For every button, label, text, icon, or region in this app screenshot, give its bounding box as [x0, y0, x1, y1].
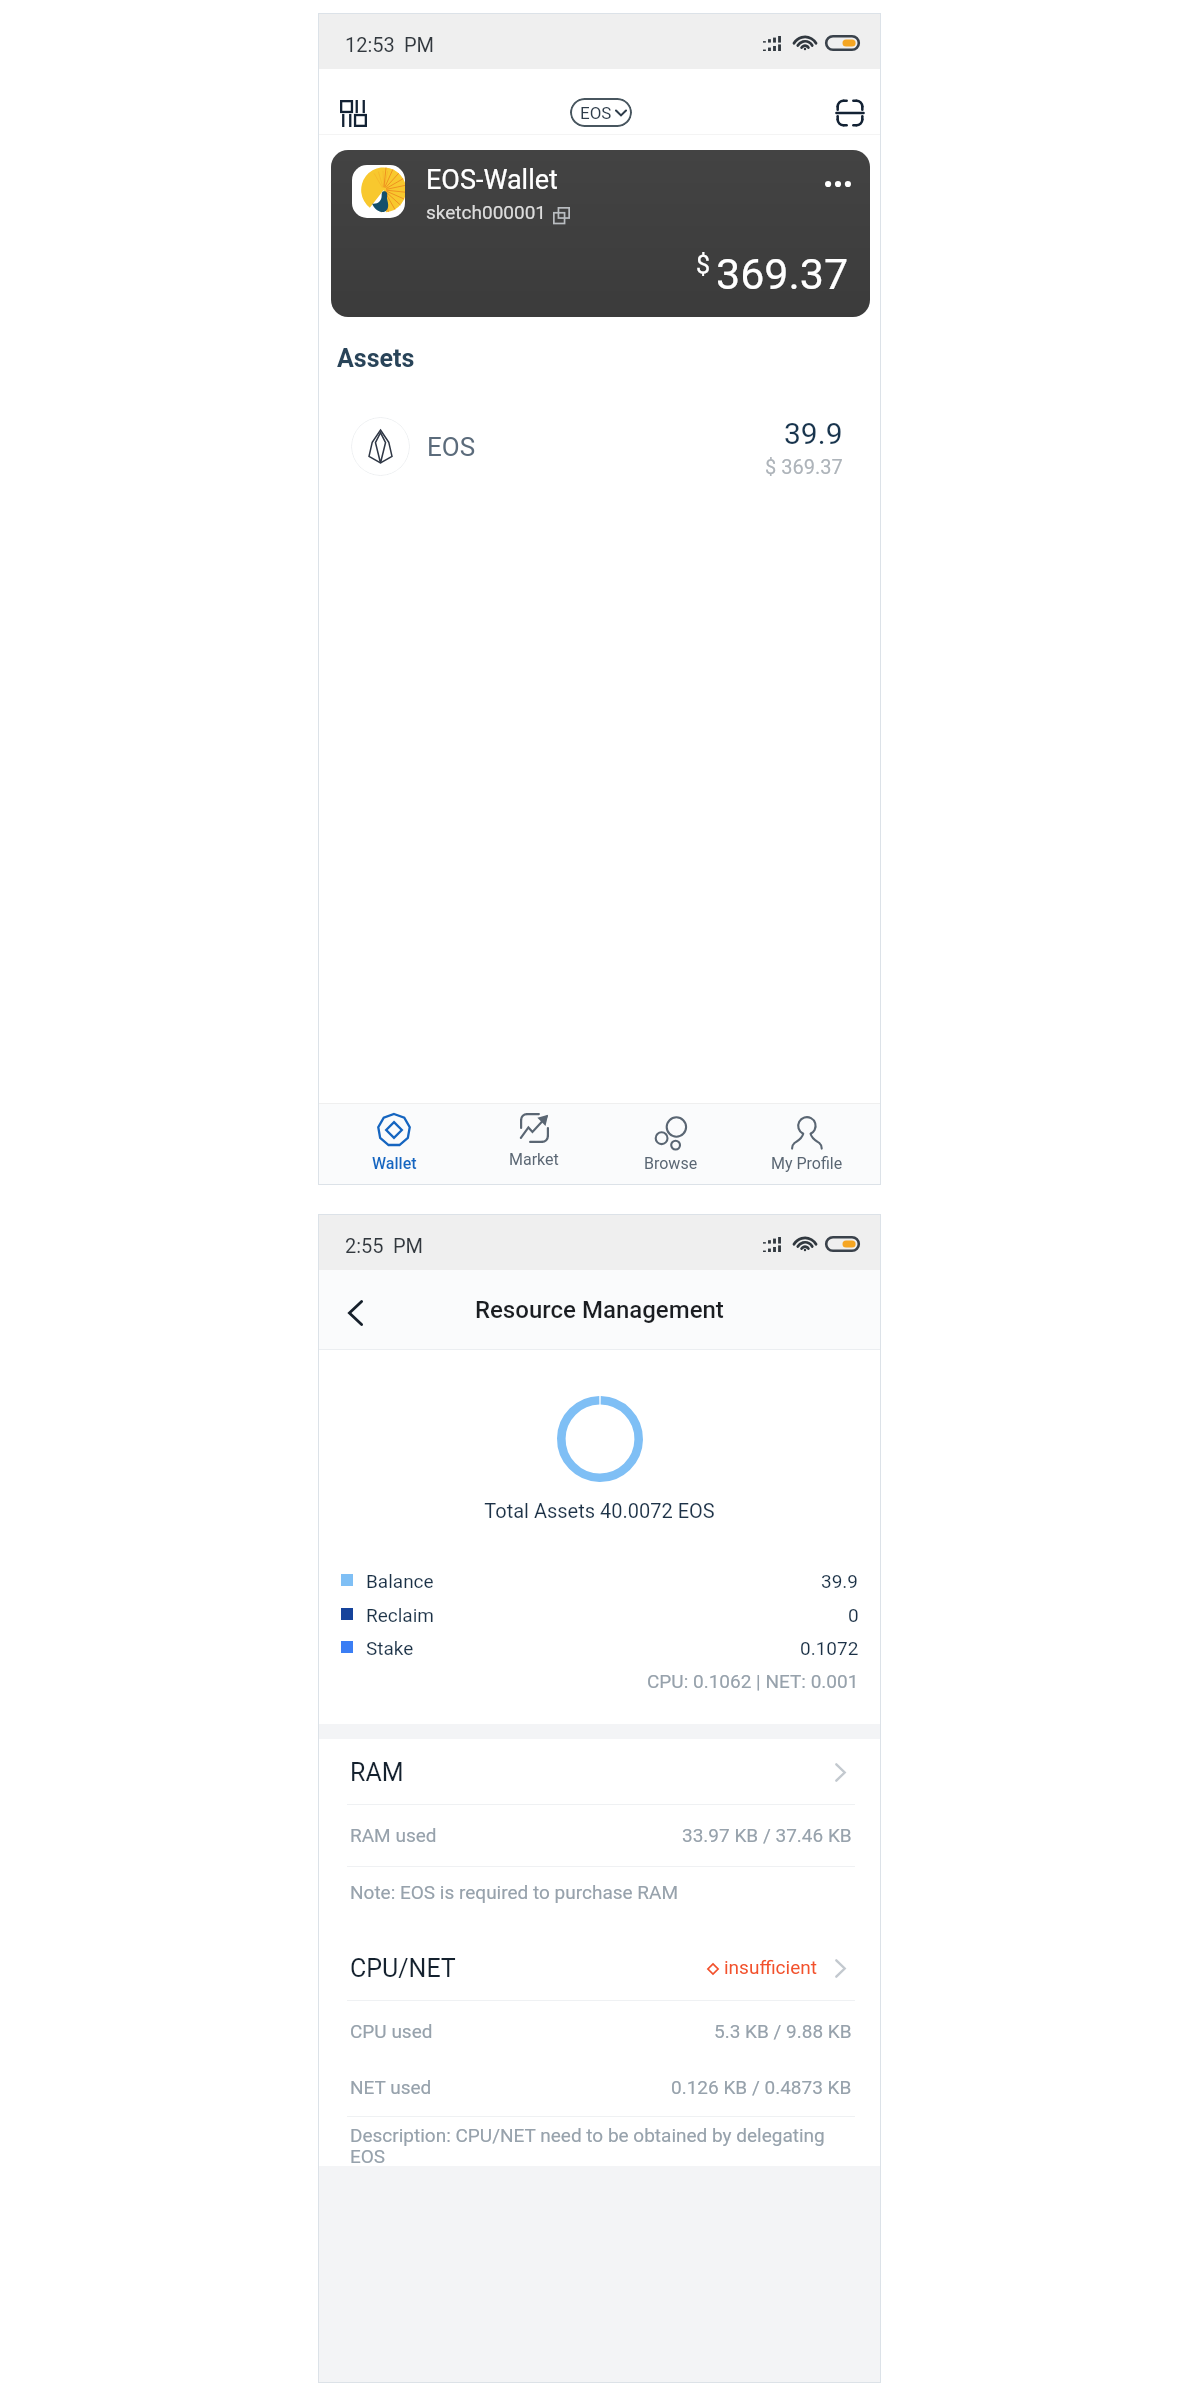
button[interactable]: Scan — [823, 86, 877, 140]
staticText: 5.3 KB / 9.88 KB — [714, 2020, 852, 2042]
button[interactable]: Back — [323, 1281, 387, 1345]
button[interactable]: Wallet list — [326, 86, 380, 140]
button[interactable]: Market — [466, 1104, 602, 1185]
button[interactable]: More options — [820, 166, 856, 202]
staticText: Note: EOS is required to purchase RAM — [350, 1881, 679, 1903]
button[interactable]: Browse — [603, 1104, 739, 1185]
staticText: Balance — [366, 1570, 434, 1592]
staticText: Assets — [337, 344, 415, 373]
button[interactable]: My Profile — [739, 1104, 875, 1185]
staticText: RAM used — [350, 1824, 437, 1846]
staticText: NET used — [350, 2076, 432, 2098]
staticText: CPU: 0.1062 | NET: 0.001 — [647, 1670, 859, 1692]
staticText: Reclaim — [366, 1604, 434, 1626]
staticText: Total Assets 40.0072 EOS — [318, 1499, 881, 1522]
staticText: $ 369.37 — [765, 455, 843, 478]
staticText: Wallet — [372, 1154, 417, 1173]
staticText: EOS-Wallet — [426, 164, 558, 196]
staticText: sketch000001 — [426, 201, 547, 223]
staticText: 0.1072 — [800, 1637, 859, 1659]
button[interactable]: EOS-Wallet — [331, 150, 870, 317]
staticText: CPU/NET — [350, 1954, 456, 1983]
button[interactable]: CPU/NET — [318, 1937, 881, 1999]
button[interactable]: EOS — [318, 408, 881, 484]
staticText: 12:53 — [345, 33, 395, 56]
staticText: 2:55 — [345, 1234, 384, 1257]
button[interactable]: EOS — [570, 98, 632, 127]
staticText: Resource Management — [475, 1296, 724, 1324]
staticText: EOS — [580, 103, 612, 123]
staticText: insufficient — [724, 1956, 817, 1978]
staticText: 0.126 KB / 0.4873 KB — [671, 2076, 852, 2098]
button[interactable]: RAM — [318, 1741, 881, 1803]
staticText: Stake — [366, 1637, 414, 1659]
staticText: RAM — [350, 1758, 404, 1787]
staticText: PM — [404, 33, 435, 56]
staticText: 39.9 — [821, 1570, 859, 1592]
staticText: 33.97 KB / 37.46 KB — [682, 1824, 852, 1846]
staticText: Description: CPU/NET need to be obtained… — [350, 2124, 825, 2168]
staticText: EOS — [427, 432, 476, 462]
staticText: Market — [509, 1150, 559, 1169]
staticText: CPU used — [350, 2020, 433, 2042]
staticText: My Profile — [771, 1154, 843, 1173]
staticText: Browse — [644, 1154, 698, 1173]
staticText: PM — [393, 1234, 424, 1257]
staticText: 369.37 — [716, 249, 849, 299]
staticText: $ — [696, 250, 711, 279]
staticText: 0 — [848, 1604, 859, 1626]
staticText: 39.9 — [784, 416, 843, 451]
button[interactable]: Copy address — [552, 206, 570, 224]
button[interactable]: Wallet — [326, 1104, 462, 1185]
